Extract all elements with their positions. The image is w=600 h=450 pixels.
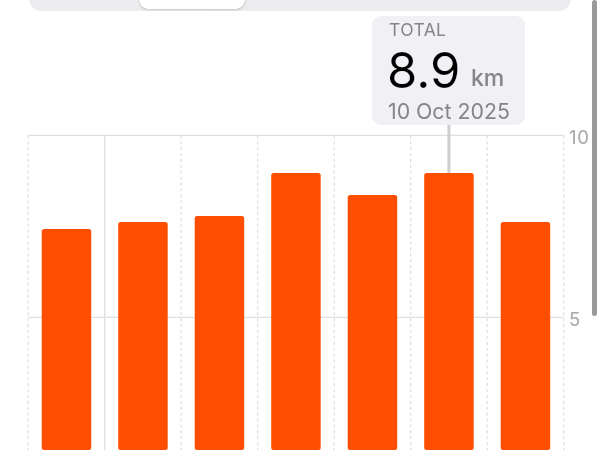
button[interactable]: Total 8.9 km on 10 Oct 2025: [372, 16, 525, 125]
staticText: TOTAL: [389, 19, 447, 40]
button[interactable]: Week: [139, 0, 245, 9]
staticText: 5: [569, 308, 581, 330]
staticText: km: [471, 64, 505, 92]
staticText: 8.9: [387, 41, 461, 100]
staticText: 10 Oct 2025: [388, 98, 510, 124]
staticText: 10: [569, 126, 590, 148]
other: Scroll position: [592, 0, 597, 316]
